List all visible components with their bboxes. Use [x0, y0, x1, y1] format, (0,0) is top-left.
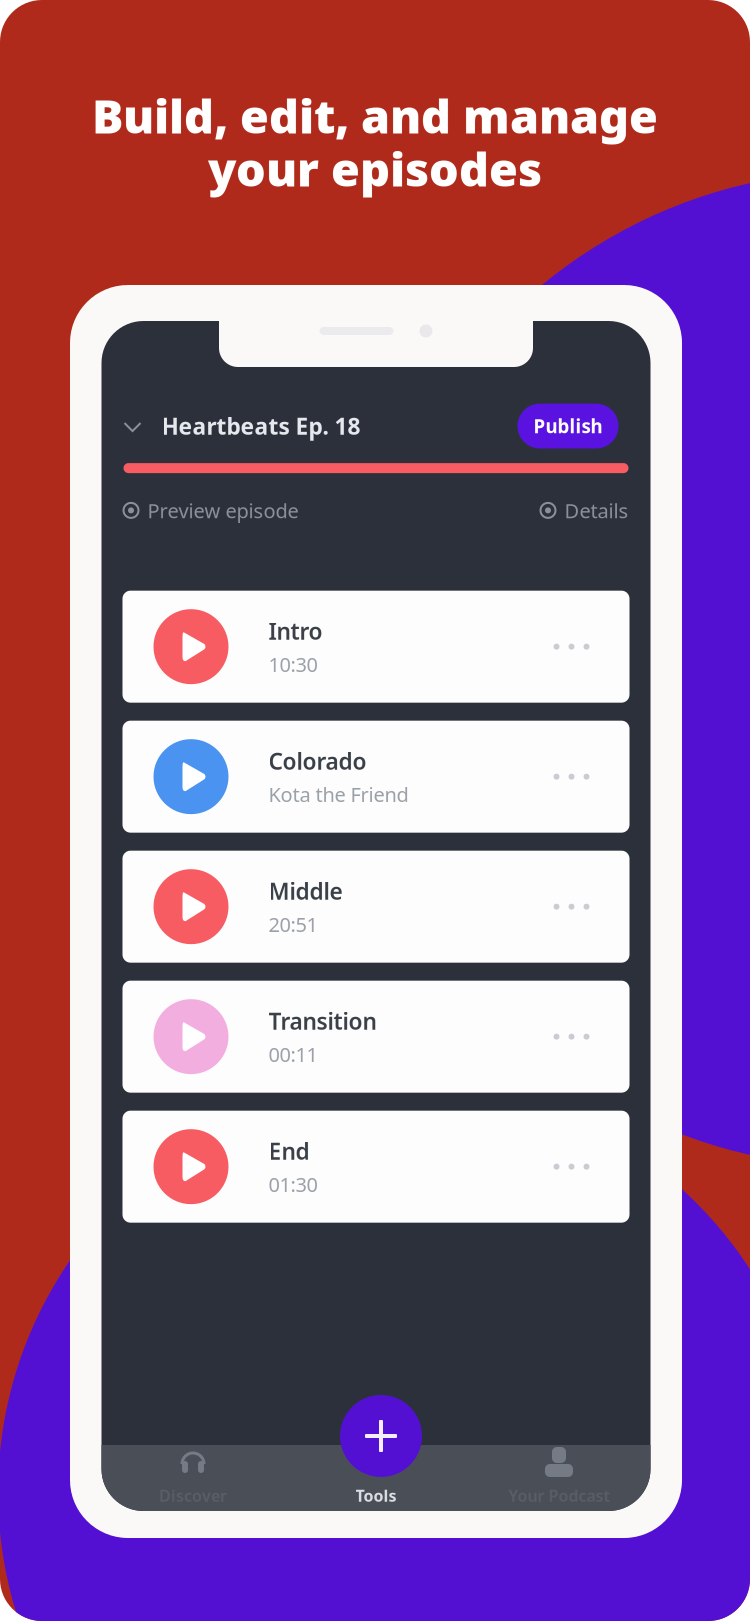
staticText: Publish: [533, 414, 602, 438]
button[interactable]: Create: [340, 1395, 422, 1477]
staticText: 00:11: [268, 1041, 317, 1067]
staticText: Discover: [159, 1485, 227, 1506]
button[interactable]: Tools: [284, 1447, 467, 1506]
staticText: Build, edit, and manage: [92, 84, 658, 146]
button[interactable]: End: [122, 1111, 629, 1223]
staticText: 01:30: [268, 1171, 317, 1197]
staticText: Intro: [268, 616, 322, 646]
staticText: Details: [564, 497, 628, 524]
button[interactable]: Middle: [122, 851, 629, 963]
button[interactable]: Discover: [101, 1447, 284, 1506]
button[interactable]: Preview episode: [123, 497, 298, 524]
button[interactable]: Publish: [517, 404, 618, 448]
button[interactable]: Colorado: [122, 721, 629, 833]
staticText: End: [268, 1136, 309, 1166]
button[interactable]: Details: [540, 497, 628, 524]
button[interactable]: Transition: [122, 981, 629, 1093]
staticText: 10:30: [268, 651, 317, 677]
button[interactable]: Intro: [122, 591, 629, 703]
staticText: your episodes: [208, 137, 542, 199]
staticText: Your Podcast: [508, 1485, 609, 1506]
staticText: Colorado: [268, 746, 366, 776]
staticText: Preview episode: [147, 497, 298, 524]
staticText: Tools: [355, 1485, 396, 1506]
staticText: Middle: [268, 876, 342, 906]
button[interactable]: Heartbeats Ep. 18: [123, 403, 360, 449]
staticText: Heartbeats Ep. 18: [161, 411, 360, 441]
staticText: 20:51: [268, 911, 317, 937]
button[interactable]: Your Podcast: [467, 1447, 650, 1506]
staticText: Kota the Friend: [268, 781, 408, 807]
staticText: Transition: [268, 1006, 376, 1036]
